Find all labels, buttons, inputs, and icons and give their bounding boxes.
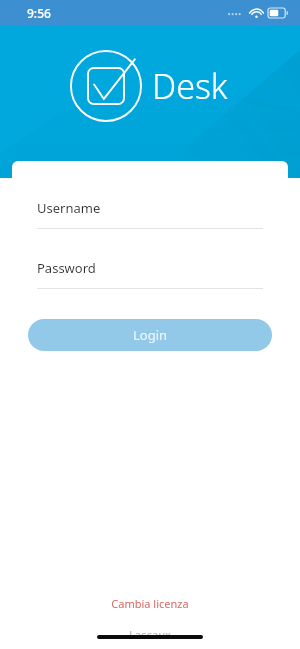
button[interactable]: Password — [37, 259, 263, 289]
button[interactable]: Username — [37, 199, 263, 229]
button[interactable]: Cambia licenza — [103, 594, 197, 613]
staticText: Desk — [152, 63, 228, 109]
staticText: Lascaux — [129, 627, 172, 642]
staticText: 9:56 — [27, 5, 51, 21]
staticText: Password — [37, 259, 96, 277]
staticText: Cambia licenza — [111, 596, 189, 611]
staticText: Username — [37, 199, 101, 217]
staticText: Login — [133, 326, 168, 344]
button[interactable]: Login — [28, 319, 272, 351]
